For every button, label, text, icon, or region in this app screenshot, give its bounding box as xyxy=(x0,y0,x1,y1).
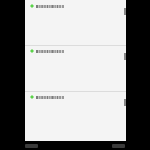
button[interactable]: Prev xyxy=(25,144,38,148)
button[interactable]: Page handle xyxy=(25,0,126,45)
button[interactable]: Page handle xyxy=(25,91,126,142)
button[interactable]: Next xyxy=(112,144,125,148)
button[interactable]: Page handle xyxy=(25,45,126,91)
